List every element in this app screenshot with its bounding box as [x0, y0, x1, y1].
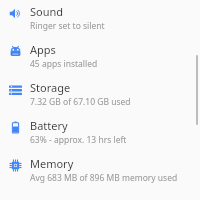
- button[interactable]: Battery: [0, 116, 200, 154]
- staticText: Sound: [30, 4, 64, 19]
- staticText: Apps: [30, 42, 56, 57]
- other: Apps: [9, 45, 22, 58]
- staticText: Battery: [30, 118, 68, 133]
- button[interactable]: Sound: [0, 2, 200, 40]
- other: Memory: [9, 159, 22, 172]
- staticText: Avg 683 MB of 896 MB memory used: [30, 172, 178, 184]
- staticText: Ringer set to silent: [30, 20, 105, 32]
- button[interactable]: Apps: [0, 40, 200, 78]
- other: Battery: [9, 121, 22, 134]
- staticText: 7.32 GB of 67.10 GB used: [30, 96, 131, 108]
- other: Storage: [9, 83, 22, 96]
- staticText: 45 apps installed: [30, 58, 98, 70]
- other: Sound: [9, 7, 22, 20]
- staticText: Memory: [30, 156, 74, 171]
- staticText: Storage: [30, 80, 71, 95]
- button[interactable]: Storage: [0, 78, 200, 116]
- button[interactable]: Memory: [0, 154, 200, 192]
- staticText: 63% - approx. 13 hrs left: [30, 134, 127, 146]
